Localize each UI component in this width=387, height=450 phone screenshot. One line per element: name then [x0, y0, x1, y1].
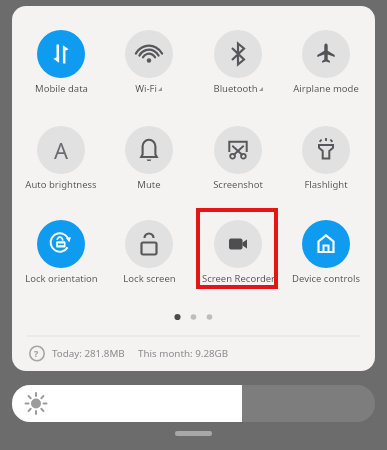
button[interactable]: Mute: [105, 124, 193, 198]
button[interactable]: [12, 385, 375, 422]
button[interactable]: Device controls: [282, 218, 370, 292]
staticText: Airplane mode: [293, 82, 359, 95]
button[interactable]: Wi-Fi: [105, 28, 193, 102]
staticText: A: [54, 135, 69, 165]
staticText: Auto brightness: [25, 178, 97, 191]
staticText: Flashlight: [304, 178, 348, 191]
button[interactable]: Bluetooth: [194, 28, 282, 102]
button[interactable]: Lock orientation: [17, 218, 105, 292]
button[interactable]: Flashlight: [282, 124, 370, 198]
staticText: Screen Recorder: [202, 272, 275, 285]
button[interactable]: Screen Recorder: [194, 218, 282, 292]
staticText: Device controls: [292, 272, 360, 285]
staticText: This month: 9.28GB: [138, 347, 229, 360]
staticText: Wi-Fi: [135, 82, 157, 95]
button[interactable]: Screenshot: [194, 124, 282, 198]
staticText: Mute: [137, 178, 161, 191]
button[interactable]: Lock screen: [105, 218, 193, 292]
staticText: Bluetooth: [213, 82, 258, 95]
button[interactable]: Mobile data: [17, 28, 105, 102]
button[interactable]: Airplane mode: [282, 28, 370, 102]
staticText: ?: [34, 347, 39, 359]
button[interactable]: Today: 281.8MB: [52, 341, 229, 366]
staticText: Lock orientation: [25, 272, 98, 285]
staticText: Lock screen: [123, 272, 176, 285]
staticText: Screenshot: [213, 178, 263, 191]
button[interactable]: A: [17, 124, 105, 198]
staticText: Mobile data: [35, 82, 88, 95]
staticText: Today: 281.8MB: [52, 347, 125, 360]
